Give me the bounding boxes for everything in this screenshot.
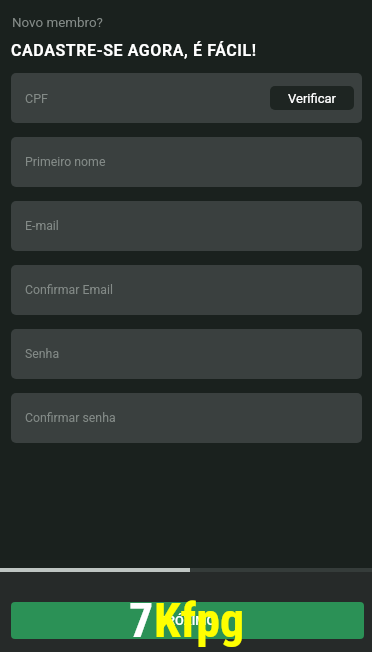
staticText: Primeiro nome [25, 155, 106, 169]
button[interactable]: Senha [11, 329, 362, 379]
staticText: PRÓXIMO [159, 613, 216, 628]
staticText: Confirmar senha [25, 411, 116, 425]
staticText: 7 [129, 592, 154, 648]
staticText: Confirmar Email [25, 283, 113, 297]
button[interactable]: Primeiro nome [11, 137, 362, 187]
button[interactable]: PRÓXIMO [11, 602, 364, 639]
button[interactable]: Confirmar Email [11, 265, 362, 315]
staticText: Senha [25, 347, 60, 361]
staticText: Kfpg [154, 592, 245, 648]
button[interactable]: Verificar [270, 86, 354, 110]
staticText: Verificar [288, 91, 336, 106]
staticText: E-mail [25, 219, 59, 233]
button[interactable]: E-mail [11, 201, 362, 251]
staticText: CPF [25, 91, 48, 106]
staticText: CADASTRE-SE AGORA, É FÁCIL! [11, 41, 257, 60]
staticText: Novo membro? [12, 15, 103, 31]
button[interactable]: Confirmar senha [11, 393, 362, 443]
